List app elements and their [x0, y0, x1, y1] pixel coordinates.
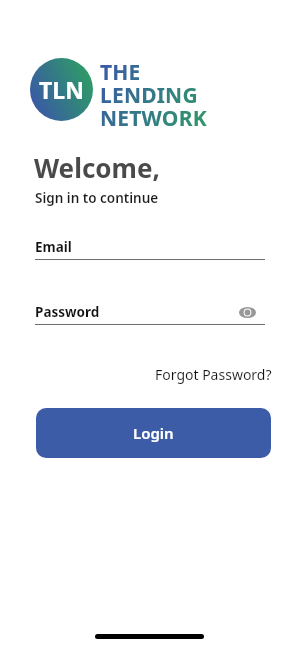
staticText: Sign in to continue: [35, 189, 159, 207]
button[interactable]: Email: [35, 238, 265, 260]
button[interactable]: [239, 306, 256, 319]
staticText: TLN: [39, 74, 84, 105]
staticText: Login: [133, 423, 174, 443]
staticText: THE LENDING NETWORK: [100, 58, 207, 132]
button[interactable]: Forgot Password?: [150, 360, 277, 389]
staticText: Password: [35, 303, 100, 321]
button[interactable]: Login: [36, 408, 271, 458]
staticText: Welcome,: [34, 150, 160, 185]
button[interactable]: Password: [35, 303, 265, 325]
staticText: Forgot Password?: [155, 365, 272, 384]
staticText: Email: [35, 238, 72, 256]
